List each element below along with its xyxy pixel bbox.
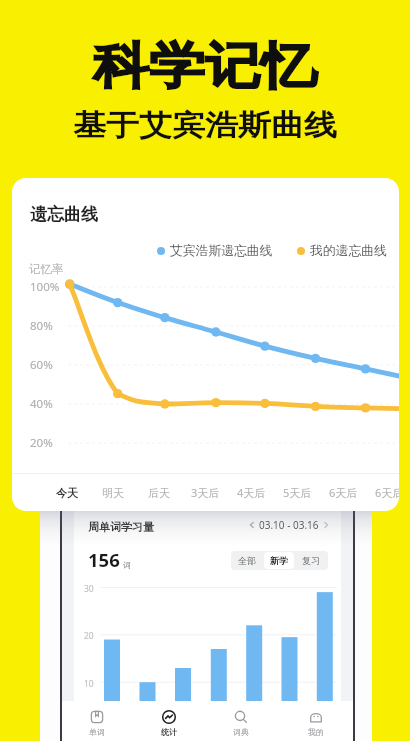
staticText: 20 xyxy=(84,630,94,642)
staticText: 基于艾宾浩斯曲线 xyxy=(73,107,337,143)
button[interactable]: 全部 xyxy=(232,552,262,569)
button[interactable]: 5天后 xyxy=(274,474,320,511)
staticText: 30 xyxy=(84,583,94,595)
button[interactable]: 新学 xyxy=(264,552,294,569)
button[interactable]: 3天后 xyxy=(182,474,228,511)
staticText: 4天后 xyxy=(237,485,266,500)
button[interactable]: 6天后 xyxy=(320,474,366,511)
staticText: 周单词学习量 xyxy=(88,520,154,534)
staticText: 复习 xyxy=(302,555,320,566)
staticText: 5天后 xyxy=(283,485,312,500)
button[interactable]: Profile xyxy=(294,703,338,739)
staticText: 新学 xyxy=(270,555,288,566)
staticText: 统计 xyxy=(161,727,177,737)
staticText: 6天后 xyxy=(329,485,358,500)
staticText: 词典 xyxy=(233,727,249,737)
button[interactable]: Dictionary xyxy=(219,703,263,739)
button[interactable]: 复习 xyxy=(296,552,326,569)
staticText: 艾宾浩斯遗忘曲线 xyxy=(170,243,273,259)
button[interactable]: Words xyxy=(75,703,119,739)
staticText: 我的 xyxy=(308,727,324,737)
staticText: 6天后 xyxy=(375,485,399,500)
staticText: 40% xyxy=(30,396,53,412)
staticText: 明天 xyxy=(102,486,124,500)
staticText: 80% xyxy=(30,318,53,334)
button[interactable]: 6天后 xyxy=(366,474,399,511)
staticText: 今天 xyxy=(56,486,78,500)
staticText: 100% xyxy=(30,279,60,295)
button[interactable]: Previous week xyxy=(247,518,331,532)
staticText: 词 xyxy=(123,560,131,570)
staticText: 3天后 xyxy=(191,485,220,500)
staticText: 遗忘曲线 xyxy=(30,204,98,225)
button[interactable]: 后天 xyxy=(136,474,182,511)
staticText: 后天 xyxy=(148,486,170,500)
other: Previous week xyxy=(247,520,257,530)
button[interactable]: 明天 xyxy=(90,474,136,511)
staticText: 科学记忆 xyxy=(93,35,317,98)
staticText: 03.10 - 03.16 xyxy=(259,518,319,532)
button[interactable]: 今天 xyxy=(44,474,90,511)
staticText: 我的遗忘曲线 xyxy=(310,243,387,259)
staticText: 156 xyxy=(88,547,120,572)
button[interactable]: 4天后 xyxy=(228,474,274,511)
staticText: 全部 xyxy=(238,555,256,566)
staticText: 记忆率 xyxy=(29,262,64,276)
staticText: 20% xyxy=(30,435,53,451)
button[interactable]: Statistics xyxy=(147,703,191,739)
other: Next week xyxy=(321,520,331,530)
staticText: 60% xyxy=(30,357,53,373)
staticText: 单词 xyxy=(89,727,105,737)
staticText: 10 xyxy=(84,678,94,690)
